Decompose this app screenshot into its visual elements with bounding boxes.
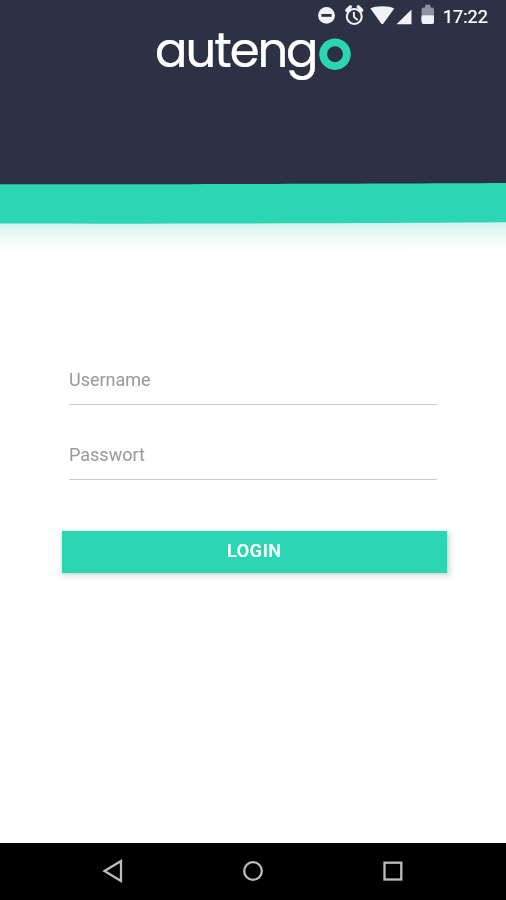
staticText: LOGIN xyxy=(227,540,282,561)
staticText: Passwort xyxy=(69,444,145,465)
staticText: Username xyxy=(69,369,151,390)
button[interactable]: Username xyxy=(69,369,437,405)
button[interactable]: LOGIN xyxy=(62,531,447,573)
button[interactable]: Back xyxy=(0,843,130,900)
staticText: auteng xyxy=(155,17,317,84)
button[interactable]: Passwort xyxy=(69,444,437,480)
button[interactable]: Recents xyxy=(376,843,506,900)
staticText: 17:22 xyxy=(443,6,488,27)
button[interactable]: Home xyxy=(203,843,303,900)
